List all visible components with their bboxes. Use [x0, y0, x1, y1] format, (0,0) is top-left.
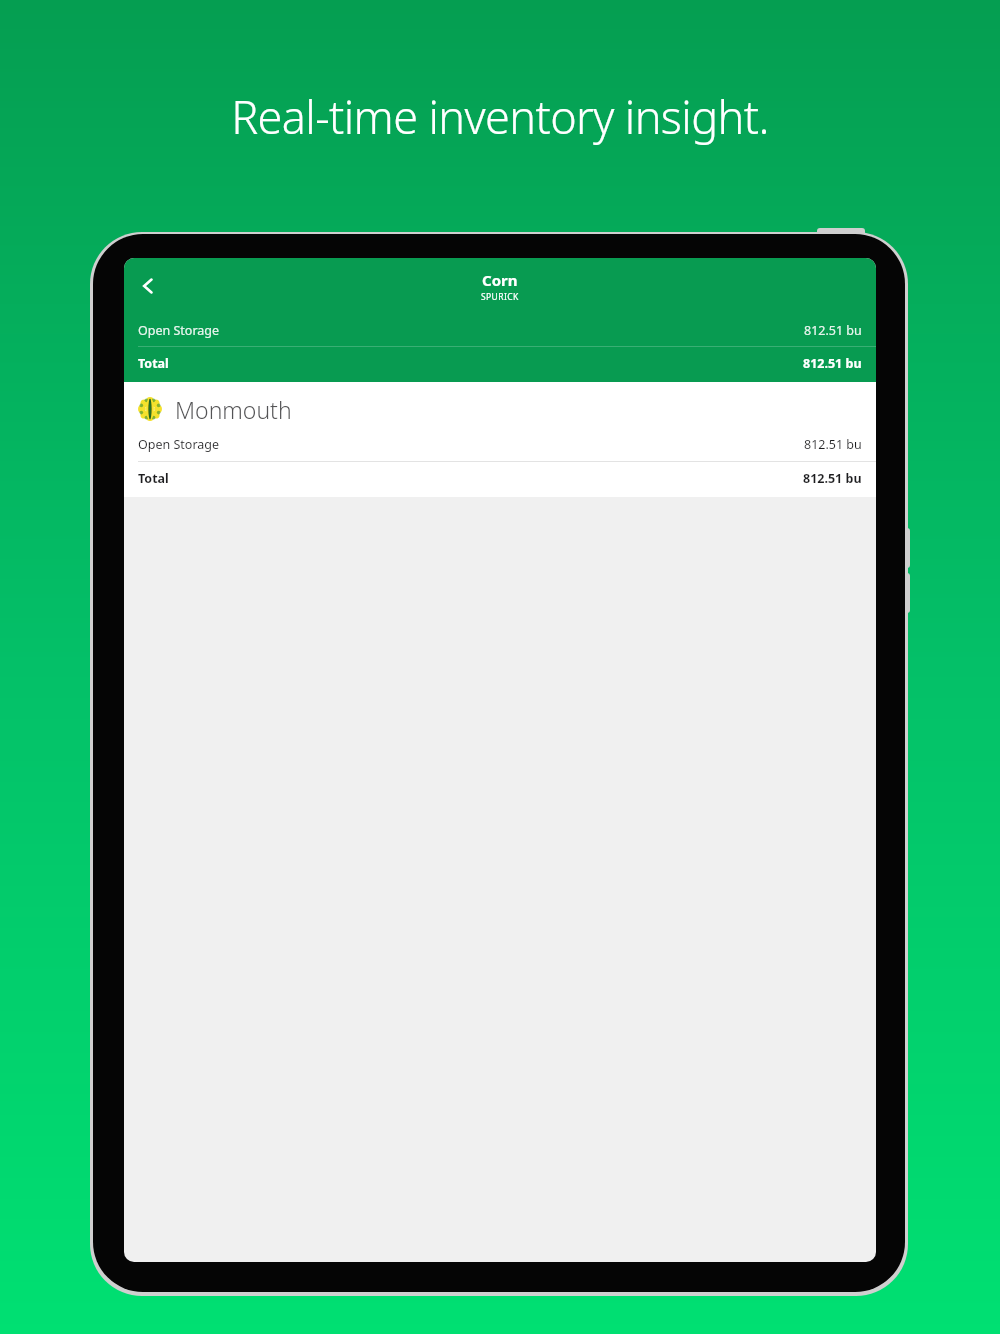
button[interactable]: Total [138, 462, 862, 495]
staticText: Real-time inventory insight. [231, 86, 769, 147]
button[interactable]: Monmouth [124, 382, 876, 497]
staticText: 812.51 bu [803, 470, 862, 487]
staticText: Monmouth [175, 394, 292, 425]
staticText: Total [138, 470, 169, 487]
staticText: Open Storage [138, 436, 220, 453]
staticText: 812.51 bu [804, 436, 862, 453]
staticText: Total [138, 355, 169, 372]
staticText: 812.51 bu [804, 322, 862, 339]
button[interactable]: Back [126, 264, 170, 308]
staticText: SPURICK [481, 291, 519, 303]
staticText: Corn [482, 270, 518, 290]
button[interactable]: Open Storage [138, 428, 862, 461]
staticText: Open Storage [138, 322, 220, 339]
button[interactable]: Total [138, 347, 862, 379]
staticText: 812.51 bu [803, 355, 862, 372]
button[interactable]: Open Storage [138, 314, 862, 346]
